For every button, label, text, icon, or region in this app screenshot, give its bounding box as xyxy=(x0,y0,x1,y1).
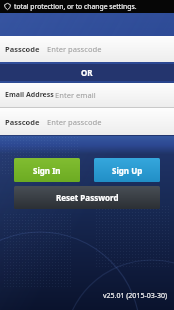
button[interactable]: Reset Password xyxy=(14,186,160,209)
staticText: OR xyxy=(81,67,93,78)
staticText: Sign In xyxy=(33,165,61,176)
staticText: v25.01 (2015-03-30) xyxy=(103,291,168,301)
button[interactable]: Sign Up xyxy=(94,158,160,182)
staticText: Sign Up xyxy=(112,165,143,176)
staticText: Enter email xyxy=(55,90,96,100)
staticText: Enter passcode xyxy=(47,117,102,127)
staticText: Reset Password xyxy=(56,192,119,203)
button[interactable]: Email Address xyxy=(0,83,174,107)
button[interactable]: Passcode xyxy=(0,108,174,135)
staticText: Enter passcode xyxy=(47,44,102,54)
button[interactable]: Sign In xyxy=(14,158,80,182)
staticText: Email Address xyxy=(5,90,54,100)
staticText: Passcode xyxy=(5,44,40,54)
staticText: total protection, or to change settings. xyxy=(14,2,137,11)
button[interactable]: total protection, or to change settings. xyxy=(0,0,174,13)
staticText: Passcode xyxy=(5,117,40,127)
button[interactable]: Passcode xyxy=(0,36,174,62)
